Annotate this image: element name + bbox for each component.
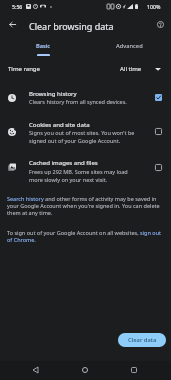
staticText: Clears history from all synced devices.: [29, 98, 127, 105]
staticText: All time: [120, 65, 142, 73]
button[interactable]: Basic: [0, 38, 86, 56]
button[interactable]: Help and feedback: [149, 13, 171, 35]
button[interactable]: Browsing history: [0, 86, 171, 117]
button[interactable]: Cached images and files: [0, 155, 171, 193]
button[interactable]: Cached images and files: [151, 160, 166, 175]
button[interactable]: Back: [27, 362, 43, 378]
button[interactable]: Cookies and site data: [151, 124, 166, 139]
button[interactable]: Clear data: [118, 333, 166, 347]
staticText: Frees up 292 MB. Some sites may load mor…: [29, 168, 128, 184]
staticText: 5:56: [12, 3, 23, 10]
staticText: Cookies and site data: [29, 121, 90, 129]
staticText: To sign out of your Google Account on al…: [7, 229, 162, 243]
staticText: Basic: [36, 42, 51, 50]
staticText: Search history and other forms of activi…: [7, 195, 162, 216]
staticText: Clear data: [128, 336, 157, 344]
staticText: Time range: [8, 65, 40, 73]
button[interactable]: Cookies and site data: [0, 117, 171, 155]
button[interactable]: Browsing history: [151, 90, 166, 105]
button[interactable]: Advanced: [86, 38, 171, 56]
button[interactable]: Time range: [0, 58, 171, 80]
staticText: Signs you out of most sites. You won't b…: [29, 129, 135, 145]
staticText: Cached images and files: [29, 159, 98, 167]
button[interactable]: Navigate up: [1, 13, 23, 35]
button[interactable]: Recent apps: [126, 362, 142, 378]
staticText: 100%: [147, 3, 161, 10]
staticText: Browsing history: [29, 90, 77, 98]
button[interactable]: Home: [77, 362, 93, 378]
staticText: Clear browsing data: [29, 20, 114, 32]
staticText: Advanced: [116, 42, 143, 50]
